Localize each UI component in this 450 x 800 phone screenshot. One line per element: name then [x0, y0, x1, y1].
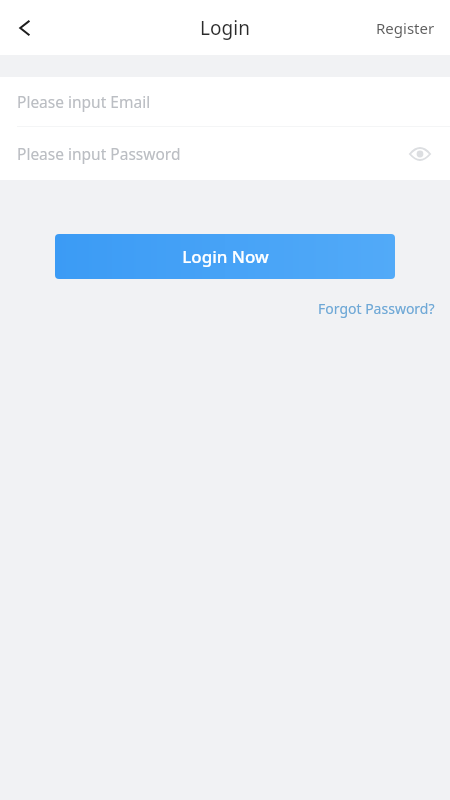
button[interactable]: Back — [4, 6, 48, 50]
staticText: Forgot Password? — [318, 299, 435, 318]
button[interactable]: Please input Password — [0, 127, 450, 180]
button[interactable]: Login Now — [55, 234, 395, 279]
staticText: Please input Password — [17, 143, 181, 164]
staticText: Please input Email — [17, 91, 151, 112]
button[interactable]: Forgot Password? — [303, 294, 450, 323]
staticText: Login Now — [182, 245, 269, 268]
button[interactable]: Show password — [398, 132, 442, 176]
staticText: Register — [376, 18, 435, 38]
staticText: Login — [200, 15, 250, 41]
button[interactable]: Please input Email — [0, 77, 450, 126]
button[interactable]: Register — [361, 4, 450, 52]
